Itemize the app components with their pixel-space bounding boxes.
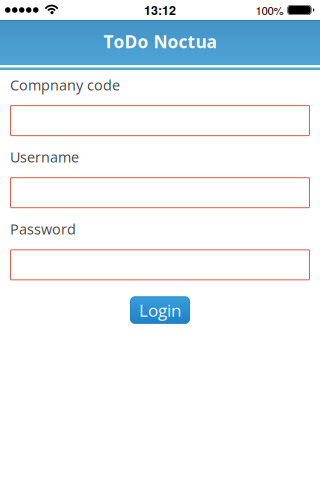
button[interactable]: Password text field (10, 249, 310, 280)
staticText: Password (10, 219, 76, 239)
staticText: ToDo Noctua (103, 30, 216, 53)
button[interactable]: Username text field (10, 177, 310, 208)
staticText: 100% (255, 2, 283, 18)
button[interactable]: Login (130, 296, 190, 324)
staticText: Username (10, 147, 79, 167)
staticText: 13:12 (144, 1, 176, 19)
staticText: Compnany code (10, 75, 120, 95)
button[interactable]: Company code text field (10, 105, 310, 136)
staticText: Login (139, 298, 181, 322)
